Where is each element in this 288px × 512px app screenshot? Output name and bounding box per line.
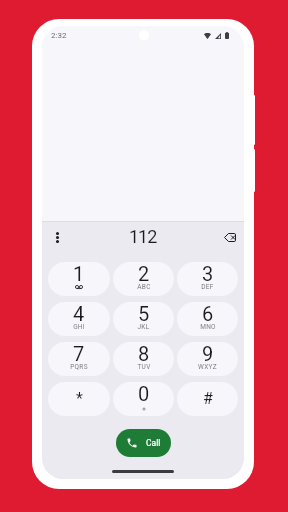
button[interactable]: 4 bbox=[48, 302, 110, 336]
staticText: 3 bbox=[202, 262, 214, 285]
button[interactable]: 5 bbox=[113, 302, 174, 336]
staticText: DEF bbox=[201, 283, 214, 291]
staticText: Call bbox=[146, 438, 161, 448]
button[interactable]: 8 bbox=[113, 342, 174, 376]
button[interactable]: 1 bbox=[48, 262, 110, 296]
staticText: 6 bbox=[202, 302, 214, 325]
button[interactable]: 7 bbox=[48, 342, 110, 376]
staticText: 1 bbox=[73, 262, 85, 285]
staticText: MNO bbox=[200, 323, 216, 331]
button[interactable]: 6 bbox=[177, 302, 238, 336]
staticText: WXYZ bbox=[198, 363, 217, 371]
staticText: 8 bbox=[138, 342, 150, 365]
staticText: 4 bbox=[73, 302, 85, 325]
staticText: * bbox=[76, 389, 83, 408]
button[interactable]: More options bbox=[46, 226, 68, 248]
staticText: # bbox=[203, 389, 213, 408]
staticText: 2 bbox=[138, 262, 150, 285]
staticText: 2:32 bbox=[51, 31, 67, 40]
staticText: 112 bbox=[129, 226, 157, 247]
staticText: GHI bbox=[73, 323, 85, 331]
button[interactable]: * bbox=[48, 382, 110, 416]
staticText: JKL bbox=[137, 323, 150, 331]
staticText: PQRS bbox=[70, 363, 88, 371]
button[interactable]: 9 bbox=[177, 342, 238, 376]
button[interactable]: 0 bbox=[113, 382, 174, 416]
button[interactable]: 3 bbox=[177, 262, 238, 296]
staticText: TUV bbox=[137, 363, 151, 371]
staticText: 7 bbox=[73, 342, 85, 365]
staticText: 0 bbox=[138, 382, 150, 405]
staticText: ABC bbox=[137, 283, 151, 291]
staticText: 9 bbox=[202, 342, 214, 365]
button[interactable]: Backspace bbox=[219, 226, 241, 248]
button[interactable]: # bbox=[177, 382, 238, 416]
staticText: 5 bbox=[138, 302, 150, 325]
button[interactable]: Call bbox=[116, 429, 171, 457]
button[interactable]: 2 bbox=[113, 262, 174, 296]
